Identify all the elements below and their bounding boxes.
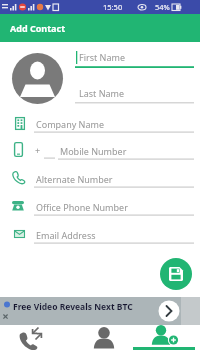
staticText: Free Video Reveals Next BTC [13,301,133,313]
staticText: First Name [79,51,125,63]
button[interactable]: Free Video Reveals Next BTC [0,297,200,325]
button[interactable]: First Name [75,49,195,69]
button[interactable] [67,325,133,355]
staticText: Alternate Number [36,173,113,185]
button[interactable]: Company Name [0,116,200,136]
staticText: Mobile Number [60,145,127,157]
staticText: Company Name [36,118,105,130]
staticText: Last Name [79,87,125,99]
button[interactable]: Alternate Number [0,171,200,191]
button[interactable] [133,325,200,355]
staticText: Email Address [36,229,96,241]
staticText: 15:50 [103,2,123,12]
button[interactable] [0,325,66,355]
button[interactable] [160,258,192,290]
staticText: 54% [155,2,170,12]
button[interactable]: Office Phone Number [0,199,200,219]
button[interactable]: Last Name [75,86,195,105]
button[interactable] [12,53,63,104]
staticText: Add Contact [10,22,66,34]
staticText: Office Phone Number [36,201,128,213]
staticText: + [35,144,41,156]
button[interactable]: Email Address [0,227,200,247]
button[interactable]: + [0,142,200,162]
